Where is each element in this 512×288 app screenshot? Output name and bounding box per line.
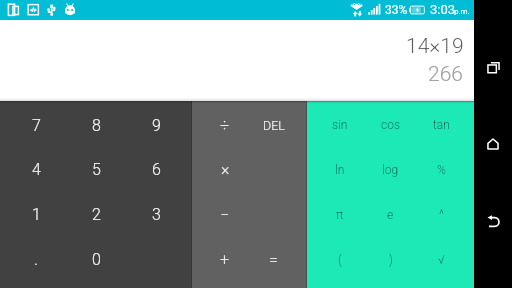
- staticText: DEL: [263, 118, 285, 133]
- staticText: 3:03: [430, 2, 456, 17]
- button[interactable]: ×: [201, 147, 249, 192]
- button[interactable]: e: [365, 192, 416, 237]
- staticText: (: [338, 253, 342, 267]
- button[interactable]: cos: [365, 103, 416, 147]
- staticText: 3: [152, 205, 161, 224]
- staticText: 2: [92, 205, 101, 224]
- staticText: −: [220, 205, 230, 224]
- staticText: ×: [221, 160, 230, 179]
- staticText: tan: [433, 118, 450, 132]
- staticText: ln: [335, 163, 345, 177]
- staticText: 0: [92, 250, 101, 269]
- button[interactable]: tan: [416, 103, 467, 147]
- staticText: sin: [332, 118, 348, 132]
- button[interactable]: 5: [66, 147, 126, 192]
- button[interactable]: 9: [126, 103, 186, 147]
- staticText: 14×19: [406, 34, 464, 59]
- staticText: p.m.: [454, 7, 470, 16]
- staticText: 8: [92, 116, 101, 135]
- staticText: 5: [92, 160, 101, 179]
- button[interactable]: 1: [6, 192, 66, 237]
- button[interactable]: Home: [479, 130, 507, 158]
- staticText: +: [220, 250, 230, 269]
- staticText: 7: [32, 116, 41, 135]
- staticText: ^: [439, 208, 444, 222]
- button[interactable]: 8: [66, 103, 126, 147]
- button[interactable]: ^: [416, 192, 467, 237]
- button[interactable]: .: [6, 237, 66, 282]
- button[interactable]: =: [249, 237, 298, 282]
- button[interactable]: 2: [66, 192, 126, 237]
- button[interactable]: %: [416, 147, 467, 192]
- button[interactable]: log: [365, 147, 416, 192]
- button[interactable]: 4: [6, 147, 66, 192]
- staticText: 33%: [385, 3, 408, 17]
- button[interactable]: √: [416, 237, 467, 282]
- button[interactable]: 7: [6, 103, 66, 147]
- button[interactable]: ln: [314, 147, 365, 192]
- button[interactable]: sin: [314, 103, 365, 147]
- staticText: 1: [32, 205, 41, 224]
- button[interactable]: ÷: [201, 103, 249, 147]
- staticText: 9: [152, 116, 161, 135]
- staticText: 266: [428, 62, 463, 87]
- button[interactable]: 6: [126, 147, 186, 192]
- staticText: 4: [32, 160, 41, 179]
- staticText: e: [387, 208, 394, 222]
- button[interactable]: Recents: [479, 53, 507, 81]
- button[interactable]: Back: [479, 207, 507, 235]
- staticText: .: [34, 250, 38, 269]
- button[interactable]: (: [314, 237, 365, 282]
- staticText: ): [389, 253, 393, 267]
- staticText: √: [438, 253, 445, 267]
- button[interactable]: π: [314, 192, 365, 237]
- button[interactable]: ): [365, 237, 416, 282]
- staticText: %: [437, 163, 446, 177]
- staticText: log: [382, 163, 399, 177]
- button[interactable]: −: [201, 192, 249, 237]
- button[interactable]: DEL: [249, 103, 298, 147]
- staticText: π: [336, 208, 344, 222]
- staticText: cos: [381, 118, 400, 132]
- staticText: 6: [152, 160, 161, 179]
- button[interactable]: +: [201, 237, 249, 282]
- staticText: =: [269, 250, 278, 269]
- button[interactable]: 0: [66, 237, 126, 282]
- staticText: ÷: [220, 116, 230, 135]
- button[interactable]: 3: [126, 192, 186, 237]
